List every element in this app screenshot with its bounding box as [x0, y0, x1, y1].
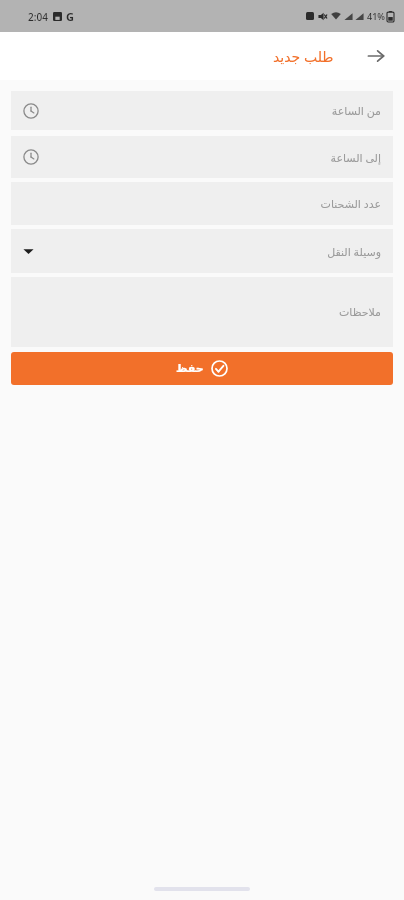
- staticText: 41%: [367, 10, 385, 22]
- button[interactable]: وسيلة النقل: [11, 229, 393, 273]
- button[interactable]: Back: [358, 38, 394, 74]
- staticText: G: [66, 9, 74, 24]
- staticText: ملاحظات: [339, 306, 381, 319]
- staticText: إلى الساعة: [330, 150, 381, 165]
- staticText: عدد الشحنات: [320, 196, 381, 211]
- staticText: 2:04: [28, 10, 48, 24]
- staticText: وسيلة النقل: [327, 244, 381, 259]
- button[interactable]: عدد الشحنات: [11, 182, 393, 225]
- staticText: حفظ: [176, 362, 204, 375]
- staticText: طلب جديد: [273, 47, 334, 66]
- staticText: من الساعة: [331, 103, 381, 118]
- button[interactable]: ملاحظات: [11, 277, 393, 347]
- button[interactable]: إلى الساعة: [11, 136, 393, 178]
- button[interactable]: من الساعة: [11, 91, 393, 130]
- button[interactable]: حفظ: [11, 352, 393, 385]
